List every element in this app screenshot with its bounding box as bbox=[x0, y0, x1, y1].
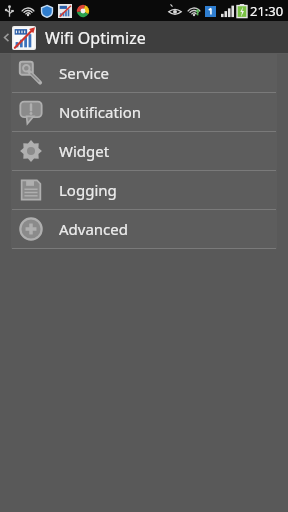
button[interactable]: Notification bbox=[11, 93, 277, 131]
staticText: Notification bbox=[59, 102, 142, 122]
staticText: Widget bbox=[59, 141, 110, 161]
button[interactable]: Navigate up bbox=[0, 21, 146, 54]
staticText: Service bbox=[59, 63, 110, 83]
button[interactable]: Advanced bbox=[11, 210, 277, 248]
staticText: Logging bbox=[59, 180, 117, 200]
button[interactable]: Logging bbox=[11, 171, 277, 209]
button[interactable]: Service bbox=[11, 54, 277, 92]
button[interactable]: Widget bbox=[11, 132, 277, 170]
other: Navigate up bbox=[2, 33, 11, 42]
staticText: Wifi Optimize bbox=[45, 27, 146, 49]
staticText: Advanced bbox=[59, 219, 129, 239]
staticText: 21:30 bbox=[250, 2, 284, 20]
